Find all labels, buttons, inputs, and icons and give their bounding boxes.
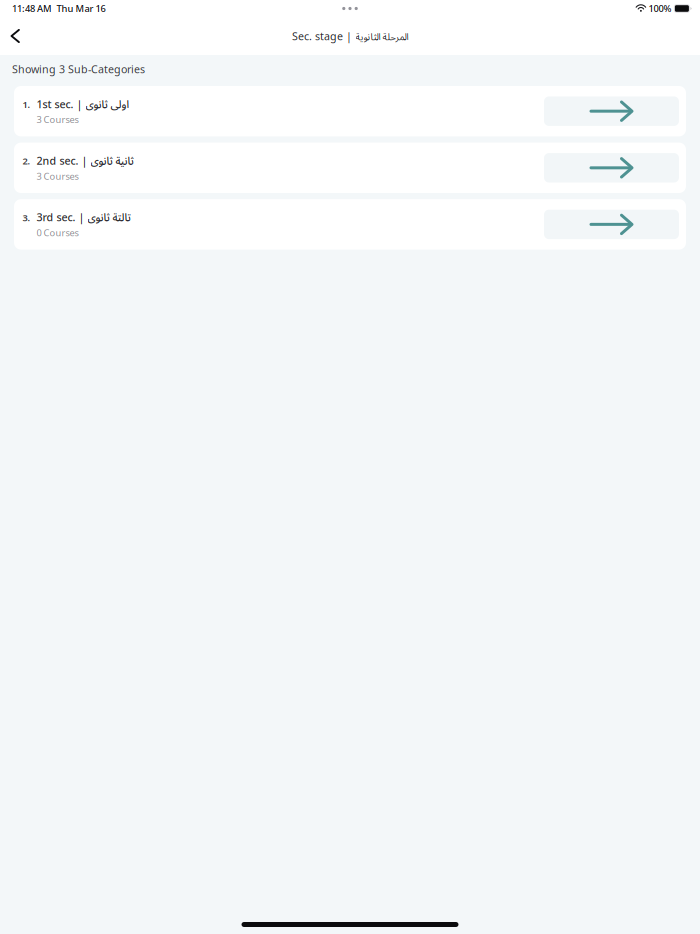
staticText: 3 Courses — [36, 170, 78, 182]
staticText: 2. — [22, 155, 30, 167]
staticText: ثانية ثانوى — [90, 153, 133, 168]
staticText: تالتة ثانوى — [87, 210, 130, 224]
staticText: 3rd sec. | — [36, 210, 84, 224]
button[interactable]: 2. — [14, 143, 686, 193]
staticText: Sec. stage | — [292, 29, 352, 43]
staticText: 3. — [22, 211, 30, 224]
button[interactable]: 3. — [14, 199, 686, 250]
button[interactable]: 1. — [14, 86, 686, 136]
staticText: 1st sec. | — [36, 97, 82, 111]
staticText: 0 Courses — [36, 226, 78, 239]
staticText: 3 Courses — [36, 113, 78, 126]
button[interactable]: Back — [0, 21, 32, 51]
staticText: المرحلة الثانوية — [355, 30, 408, 43]
staticText: اولى ثانوى — [85, 97, 129, 111]
staticText: 100% — [648, 2, 671, 15]
staticText: Showing 3 Sub-Categories — [12, 62, 145, 76]
staticText: Thu Mar 16 — [56, 2, 105, 15]
staticText: 11:48 AM — [12, 2, 52, 15]
staticText: 1. — [22, 98, 30, 110]
staticText: 2nd sec. | — [36, 153, 87, 168]
